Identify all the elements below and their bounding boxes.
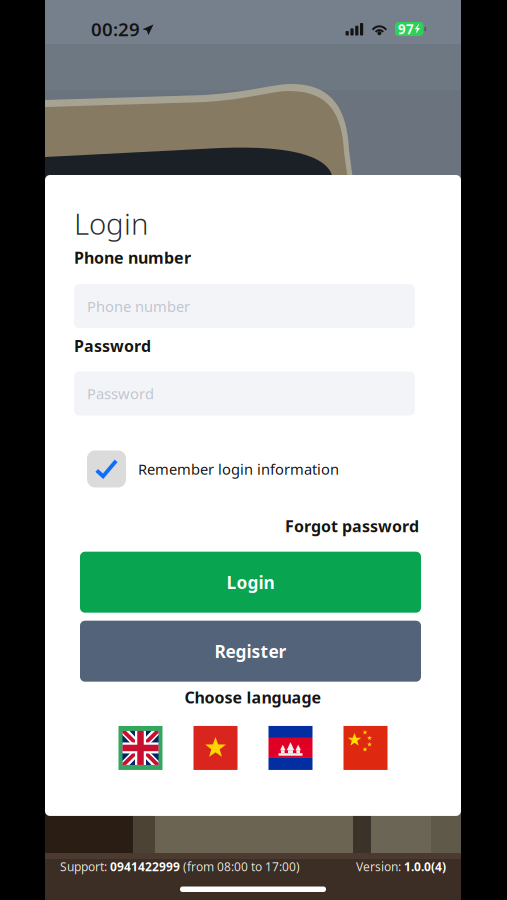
- button[interactable]: Forgot password: [74, 515, 432, 537]
- staticText: Register: [214, 640, 286, 663]
- staticText: Login: [226, 571, 274, 594]
- button[interactable]: Remember login information: [74, 450, 432, 487]
- button[interactable]: Chinese: [343, 726, 387, 770]
- button[interactable]: Khmer: [268, 726, 312, 770]
- staticText: Remember login information: [138, 459, 339, 479]
- staticText: Password: [74, 335, 151, 356]
- button[interactable]: Login: [80, 552, 421, 613]
- button[interactable]: Vietnamese: [193, 726, 237, 770]
- button[interactable]: Register: [80, 621, 421, 682]
- button[interactable]: English: [118, 726, 162, 770]
- staticText: Password: [87, 384, 154, 403]
- staticText: Choose language: [184, 687, 321, 708]
- staticText: Version:: [356, 859, 404, 874]
- staticText: (from 08:00 to 17:00): [180, 859, 300, 874]
- staticText: Phone number: [74, 247, 191, 268]
- staticText: 97: [398, 20, 414, 38]
- staticText: Phone number: [87, 296, 190, 316]
- staticText: 00:29: [91, 17, 140, 41]
- staticText: Forgot password: [285, 515, 419, 537]
- staticText: 1.0.0(4): [404, 859, 446, 874]
- staticText: Login: [74, 204, 148, 243]
- staticText: Support:: [60, 859, 110, 874]
- staticText: 0941422999: [110, 859, 180, 874]
